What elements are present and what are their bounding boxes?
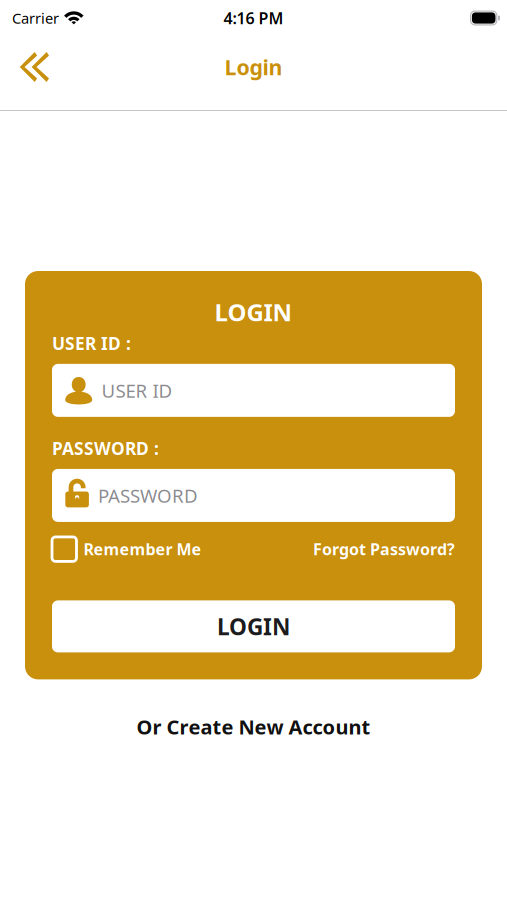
staticText: Forgot Password?	[313, 538, 455, 560]
staticText: Remember Me	[83, 538, 201, 560]
staticText: Login	[224, 53, 282, 81]
staticText: Carrier	[12, 8, 59, 28]
staticText: LOGIN	[214, 296, 292, 328]
staticText: 4:16 PM	[223, 7, 283, 29]
button[interactable]: Back	[0, 42, 62, 92]
staticText: USER ID :	[52, 332, 131, 355]
staticText: PASSWORD	[98, 483, 198, 508]
staticText: LOGIN	[217, 611, 290, 641]
staticText: Or Create New Account	[136, 713, 370, 740]
button[interactable]: LOGIN	[52, 600, 455, 652]
button[interactable]: Or Create New Account	[116, 679, 390, 750]
staticText: PASSWORD :	[52, 437, 159, 460]
staticText: USER ID	[101, 378, 172, 403]
button[interactable]: Forgot Password?	[313, 538, 455, 560]
button[interactable]: Remember Me	[52, 537, 201, 561]
